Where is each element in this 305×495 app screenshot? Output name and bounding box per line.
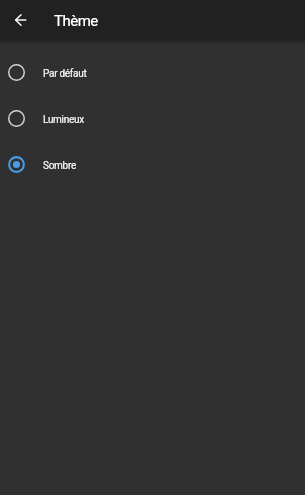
staticText: Lumineux (43, 114, 84, 126)
staticText: Sombre (43, 160, 76, 172)
button[interactable]: Back (0, 0, 41, 40)
button[interactable]: Par défaut (0, 49, 305, 95)
staticText: Par défaut (43, 68, 87, 80)
button[interactable]: Lumineux (0, 95, 305, 141)
button[interactable]: Sombre (0, 141, 305, 187)
staticText: Thème (54, 12, 98, 30)
